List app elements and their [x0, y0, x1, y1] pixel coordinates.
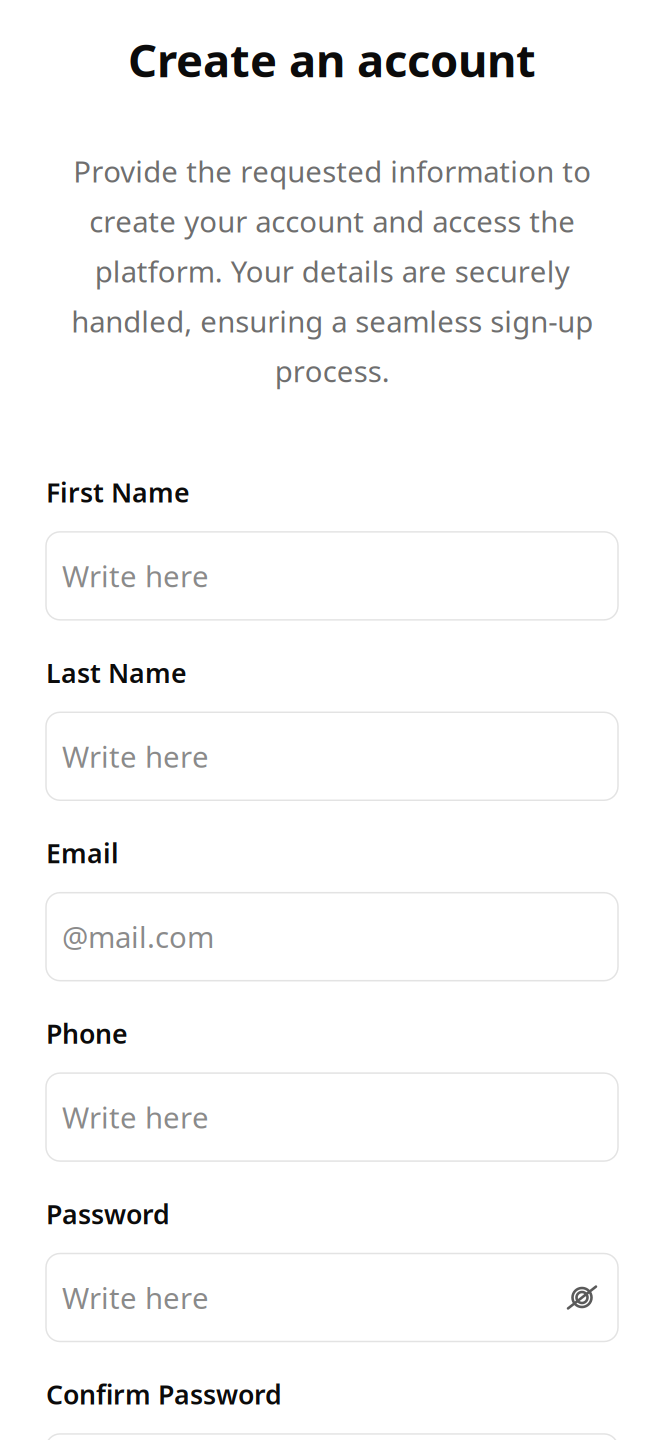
button[interactable]: Write here — [46, 1253, 618, 1341]
button[interactable]: Write here — [46, 532, 618, 620]
staticText: Email — [46, 835, 119, 871]
staticText: First Name — [46, 474, 190, 510]
staticText: Write here — [62, 737, 209, 776]
staticText: @mail.com — [62, 917, 214, 956]
staticText: Last Name — [46, 655, 187, 690]
staticText: Write here — [62, 1098, 209, 1137]
button[interactable]: Write here — [46, 1073, 618, 1161]
staticText: Write here — [62, 556, 209, 595]
staticText: Provide the requested information to cre… — [71, 152, 593, 390]
button[interactable]: Show password — [562, 1280, 602, 1314]
staticText: Password — [46, 1196, 170, 1231]
staticText: Confirm Password — [46, 1376, 282, 1412]
button[interactable]: @mail.com — [46, 893, 618, 981]
staticText: Write here — [62, 1278, 209, 1317]
button[interactable]: Write here — [46, 1434, 618, 1440]
staticText: Phone — [46, 1016, 128, 1051]
button[interactable]: Write here — [46, 712, 618, 800]
staticText: Create an account — [128, 29, 536, 90]
